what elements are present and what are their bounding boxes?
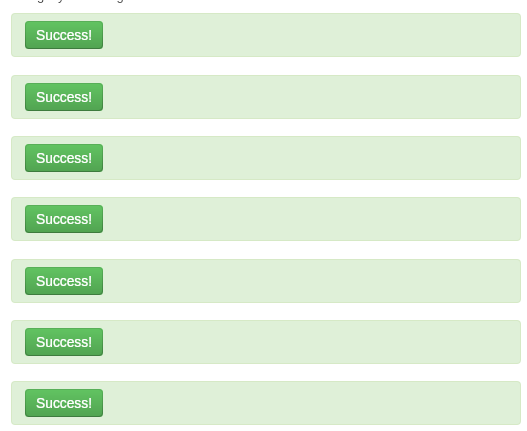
staticText: Success! [36,28,92,43]
staticText: Using style messages [11,0,138,3]
staticText: Success! [36,396,92,411]
button[interactable]: Success! [25,83,103,111]
button[interactable]: Success! [25,267,103,295]
button[interactable]: Success! [25,328,103,356]
staticText: Success! [36,212,92,227]
staticText: Success! [36,151,92,166]
button[interactable]: Success! [25,205,103,233]
staticText: Success! [36,335,92,350]
staticText: Success! [36,90,92,105]
button[interactable]: Success! [25,389,103,417]
button[interactable]: Success! [25,144,103,172]
button[interactable]: Success! [25,21,103,49]
staticText: Success! [36,274,92,289]
